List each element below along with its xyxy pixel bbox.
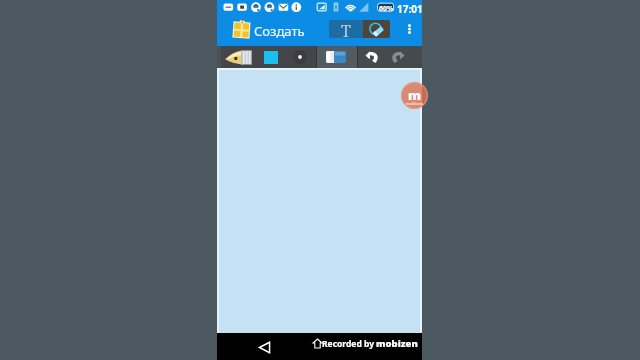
staticText: 60% [379,4,394,14]
staticText: mobizen [376,337,418,350]
button[interactable]: Pen [221,46,255,68]
button[interactable]: Undo [358,46,386,68]
button[interactable]: Back [254,337,274,357]
button[interactable]: More options [402,20,416,38]
staticText: 17:01 [397,2,423,16]
button[interactable]: Text tool [329,20,363,38]
staticText: T [341,20,351,38]
button[interactable]: Eraser [321,46,351,68]
button[interactable]: Colour [257,46,285,68]
button[interactable]: Eraser tool [363,20,390,38]
staticText: m [408,86,422,104]
button[interactable]: Redo [383,46,411,68]
staticText: Recorded by [322,338,375,350]
button[interactable]: Stroke size [286,46,314,68]
staticText: Создать [254,22,305,40]
staticText: mobizen [406,101,424,106]
